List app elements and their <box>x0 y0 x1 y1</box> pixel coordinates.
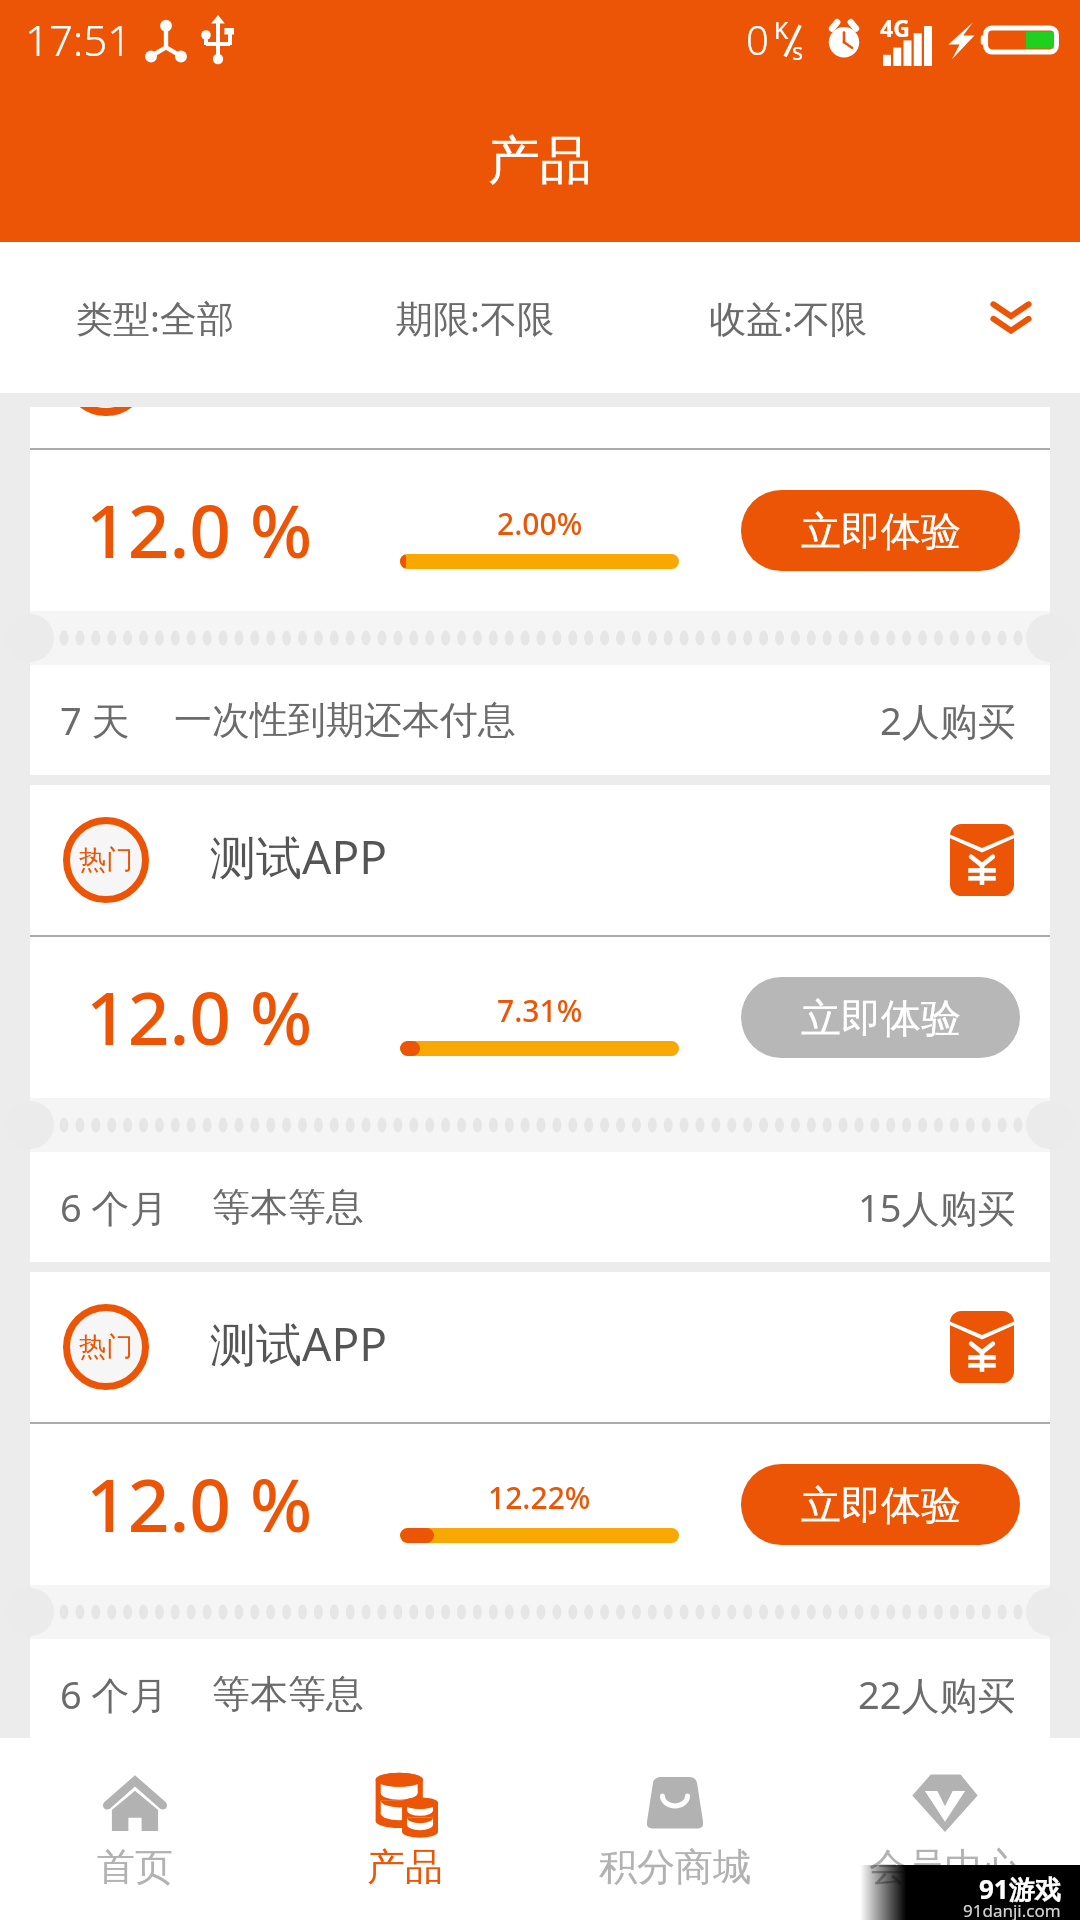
button[interactable] <box>30 407 1050 448</box>
staticText: 0 <box>746 12 769 66</box>
staticText: 12.0 % <box>86 967 313 1066</box>
staticText: 4G <box>880 12 910 43</box>
staticText: 7.31% <box>497 990 583 1031</box>
staticText: 12.0 % <box>86 480 313 579</box>
staticText: 91游戏 <box>979 1871 1061 1907</box>
staticText: 6 个月 <box>60 1181 168 1233</box>
staticText: 首页 <box>97 1843 173 1891</box>
button[interactable]: 立即体验 <box>741 490 1020 571</box>
staticText: 2.00% <box>497 503 583 544</box>
staticText: 22人购买 <box>858 1668 1016 1720</box>
staticText: 产品 <box>488 128 592 194</box>
button[interactable]: 展开更多筛选 <box>941 242 1080 393</box>
staticText: 测试APP <box>210 1312 388 1375</box>
button[interactable]: 首页 <box>0 1738 270 1920</box>
staticText: 测试APP <box>210 825 388 888</box>
staticText: 91danji.com <box>963 1899 1061 1920</box>
button[interactable]: 期限:不限 <box>360 242 590 393</box>
staticText: 6 个月 <box>60 1668 168 1720</box>
staticText: 类型:全部 <box>76 292 234 343</box>
button[interactable]: 热门 <box>30 785 1050 935</box>
button[interactable]: 7 天 <box>30 665 1050 775</box>
staticText: 会员中心 <box>869 1843 1021 1891</box>
staticText: 产品 <box>367 1843 443 1891</box>
staticText: 期限:不限 <box>396 292 554 343</box>
staticText: 收益:不限 <box>709 292 867 343</box>
staticText: s <box>792 35 804 66</box>
button[interactable]: 立即体验 <box>741 977 1020 1058</box>
button[interactable]: 热门 <box>30 1272 1050 1422</box>
staticText: 热门 <box>79 843 133 877</box>
button[interactable]: 积分商城 <box>540 1738 810 1920</box>
button[interactable]: 类型:全部 <box>40 242 270 393</box>
staticText: 12.22% <box>488 1477 591 1518</box>
button[interactable]: 领取红包 <box>950 1311 1014 1383</box>
staticText: 积分商城 <box>599 1843 751 1891</box>
staticText: 等本等息 <box>212 1183 364 1231</box>
staticText: 立即体验 <box>801 506 961 556</box>
staticText: 等本等息 <box>212 1670 364 1718</box>
staticText: 立即体验 <box>801 1480 961 1530</box>
staticText: 17:51 <box>25 11 132 68</box>
staticText: K <box>774 14 789 45</box>
button[interactable]: 6 个月 <box>30 1152 1050 1262</box>
button[interactable]: 领取红包 <box>950 824 1014 896</box>
button[interactable]: 产品 <box>270 1738 540 1920</box>
staticText: 热门 <box>79 1330 133 1364</box>
button[interactable]: 收益:不限 <box>673 242 903 393</box>
staticText: 立即体验 <box>801 993 961 1043</box>
staticText: 15人购买 <box>858 1181 1016 1233</box>
staticText: 7 天 <box>60 694 130 746</box>
staticText: 一次性到期还本付息 <box>174 696 516 744</box>
button[interactable]: 会员中心 <box>810 1738 1080 1920</box>
button[interactable]: 立即体验 <box>741 1464 1020 1545</box>
staticText: 12.0 % <box>86 1454 313 1553</box>
staticText: 2人购买 <box>880 694 1016 746</box>
button[interactable]: 6 个月 <box>30 1639 1050 1738</box>
